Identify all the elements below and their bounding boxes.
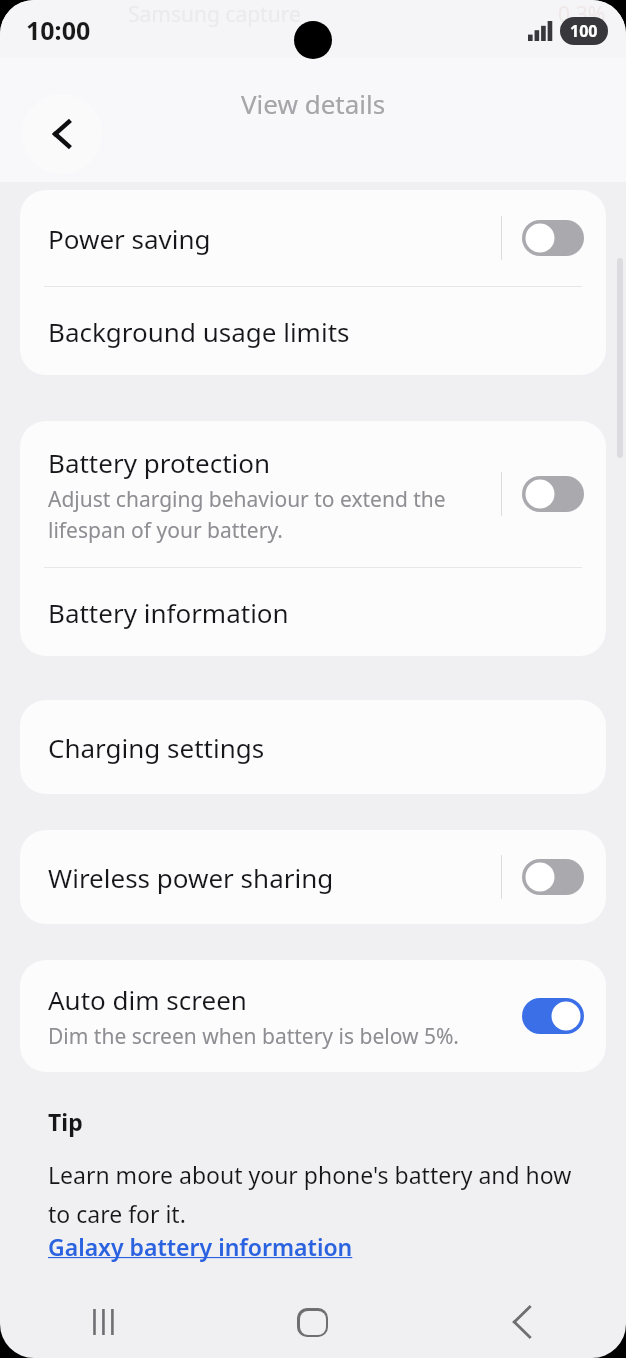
button[interactable]: Wireless power sharing	[522, 859, 584, 895]
button[interactable]: Power saving	[20, 190, 606, 286]
staticText: Battery information	[48, 595, 289, 630]
staticText: Charging settings	[48, 730, 265, 765]
button[interactable]: Galaxy battery information	[48, 1231, 353, 1262]
button[interactable]: Charging settings	[20, 700, 606, 794]
button[interactable]: Back	[22, 94, 102, 174]
staticText: 10:00	[26, 13, 91, 47]
staticText: Tip	[48, 1106, 83, 1137]
staticText: Background usage limits	[48, 314, 350, 349]
staticText: Battery protection	[48, 445, 271, 480]
button[interactable]: Back	[417, 1286, 626, 1358]
button[interactable]: Auto dim screen	[20, 960, 606, 1072]
staticText: Samsung capture	[128, 0, 301, 29]
staticText: Auto dim screen	[48, 982, 247, 1017]
staticText: Adjust charging behaviour to extend the …	[48, 485, 446, 544]
button[interactable]: Auto dim screen	[522, 998, 584, 1034]
staticText: Wireless power sharing	[48, 860, 334, 895]
button[interactable]: Home	[208, 1286, 417, 1358]
staticText: Power saving	[48, 221, 211, 256]
button[interactable]: Background usage limits	[20, 287, 606, 375]
button[interactable]: Wireless power sharing	[20, 830, 606, 924]
button[interactable]: Recents	[0, 1286, 208, 1358]
staticText: Learn more about your phone's battery an…	[48, 1159, 572, 1229]
button[interactable]: Battery information	[20, 568, 606, 656]
staticText: Dim the screen when battery is below 5%.	[48, 1022, 459, 1051]
staticText: View details	[241, 86, 386, 121]
staticText: Galaxy battery information	[48, 1231, 353, 1262]
button[interactable]: Battery protection	[20, 421, 606, 567]
button[interactable]: Power saving	[522, 220, 584, 256]
staticText: 100	[570, 20, 598, 42]
button[interactable]: Battery protection	[522, 476, 584, 512]
staticText: 0.3%	[558, 0, 606, 29]
